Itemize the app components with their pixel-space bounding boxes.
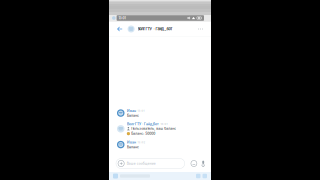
staticText: Ваше сообщение xyxy=(127,162,156,165)
button[interactable]: Emoji xyxy=(189,158,199,168)
staticText: Иван xyxy=(127,109,136,113)
button[interactable]: More options xyxy=(194,22,207,36)
button[interactable]: Ваше сообщение xyxy=(127,158,185,168)
button[interactable]: ВолгГТУ · Гайд_бот xyxy=(128,22,174,36)
staticText: ВолгГТУ · Гайд_бот xyxy=(127,122,159,126)
staticText: Баланс xyxy=(127,113,139,117)
staticText: 13:01 xyxy=(161,122,168,126)
staticText: Иван xyxy=(127,140,136,144)
staticText: 13:01 xyxy=(119,16,126,20)
staticText: Пользователь, ваш баланс xyxy=(131,127,176,131)
staticText: 13:02 xyxy=(138,141,146,144)
button[interactable]: Back xyxy=(111,22,128,36)
staticText: ВолгГТУ · Гайд_бот xyxy=(138,27,173,31)
staticText: 13:01 xyxy=(138,109,145,112)
button[interactable]: Attach xyxy=(116,158,127,168)
button[interactable]: Record voice message xyxy=(199,158,206,168)
staticText: Баланс: 50000 xyxy=(131,132,155,136)
staticText: Баланс xyxy=(127,145,139,149)
